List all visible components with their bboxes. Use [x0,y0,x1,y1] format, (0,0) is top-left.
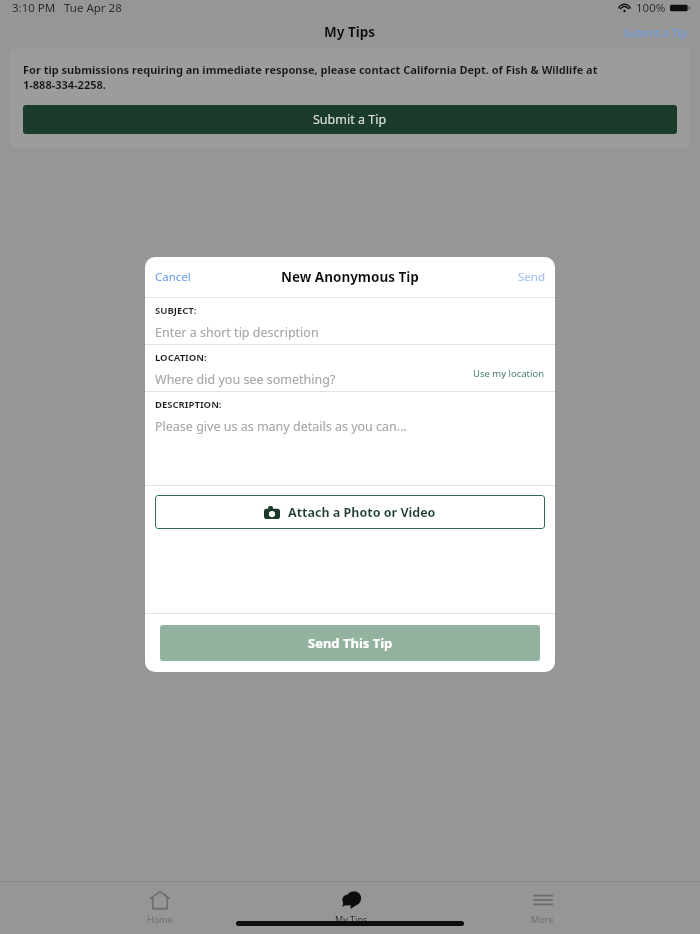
staticText: Cancel [155,269,191,285]
staticText: Use my location [473,367,545,380]
button[interactable]: Submit a Tip [611,22,700,43]
staticText: My Tips [324,23,376,41]
button[interactable]: Send This Tip [160,625,540,661]
staticText: Where did you see something? [155,371,336,388]
staticText: DESCRIPTION: [155,398,222,411]
other: Home [149,890,171,910]
button[interactable]: More [515,888,570,927]
staticText: SUBJECT: [155,304,197,317]
staticText: Please give us as many details as you ca… [155,418,407,435]
staticText: Send [518,269,545,285]
staticText: My Tips [335,913,368,925]
staticText: For tip submissions requiring an immedia… [23,62,677,92]
button[interactable]: Use my location [463,362,555,385]
button[interactable]: My Tips [319,888,384,927]
staticText: Submit a Tip [313,111,387,128]
button[interactable]: Send [508,263,555,291]
staticText: Home [147,913,173,925]
staticText: More [531,913,554,925]
other: My Tips [340,890,364,910]
staticText: Submit a Tip [623,25,688,40]
button[interactable]: Cancel [145,263,201,291]
staticText: Send This Tip [308,634,393,652]
staticText: Tue Apr 28 [64,0,122,16]
other: Camera [264,506,280,519]
staticText: 3:10 PM [12,0,56,16]
staticText: Attach a Photo or Video [288,504,436,521]
staticText: LOCATION: [155,351,207,364]
button[interactable]: Submit a Tip [23,105,677,134]
staticText: 100% [636,0,666,16]
other: More [532,890,554,910]
button[interactable]: Camera [155,495,545,529]
button[interactable]: Home [131,888,189,927]
staticText: Enter a short tip description [155,324,319,341]
staticText: New Anonymous Tip [281,268,419,286]
